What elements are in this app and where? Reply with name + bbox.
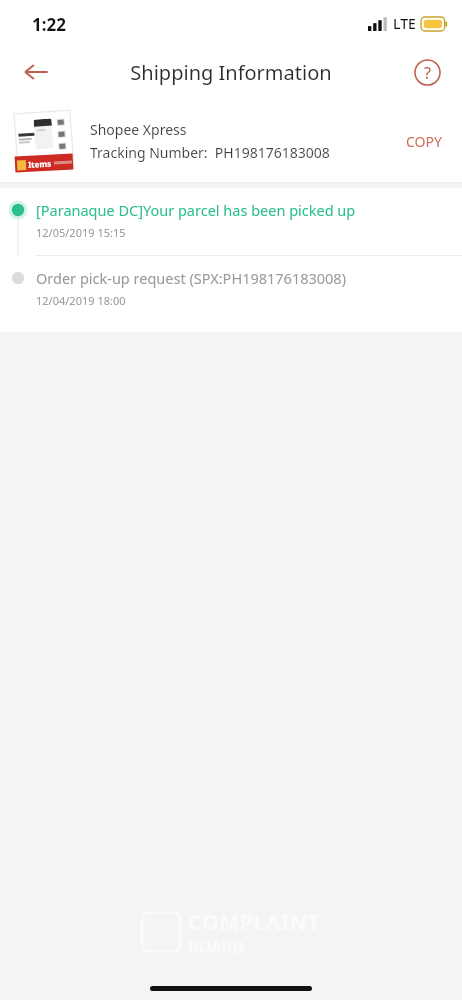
button[interactable]: COPY — [400, 124, 448, 159]
staticText: Tracking Number: PH198176183008 — [90, 143, 330, 162]
staticText: COPY — [406, 132, 442, 151]
staticText: Shopee Xpress — [90, 120, 187, 139]
staticText: 1:22 — [32, 13, 66, 36]
staticText: Order pick-up request (SPX:PH19817618300… — [36, 268, 347, 288]
staticText: 12/04/2019 18:00 — [36, 293, 126, 308]
staticText: 12/05/2019 15:15 — [36, 225, 126, 240]
staticText: [Paranaque DC]Your parcel has been picke… — [36, 200, 356, 220]
staticText: Items — [28, 158, 52, 170]
staticText: LTE — [393, 14, 416, 33]
button[interactable]: [Paranaque DC]Your parcel has been picke… — [0, 188, 462, 256]
button[interactable]: Help — [406, 51, 448, 93]
staticText: Shipping Information — [130, 59, 332, 86]
button[interactable]: Items — [0, 98, 462, 183]
button[interactable]: Order pick-up request (SPX:PH19817618300… — [0, 256, 462, 324]
button[interactable]: Back — [12, 48, 60, 96]
staticText: ? — [424, 62, 431, 84]
